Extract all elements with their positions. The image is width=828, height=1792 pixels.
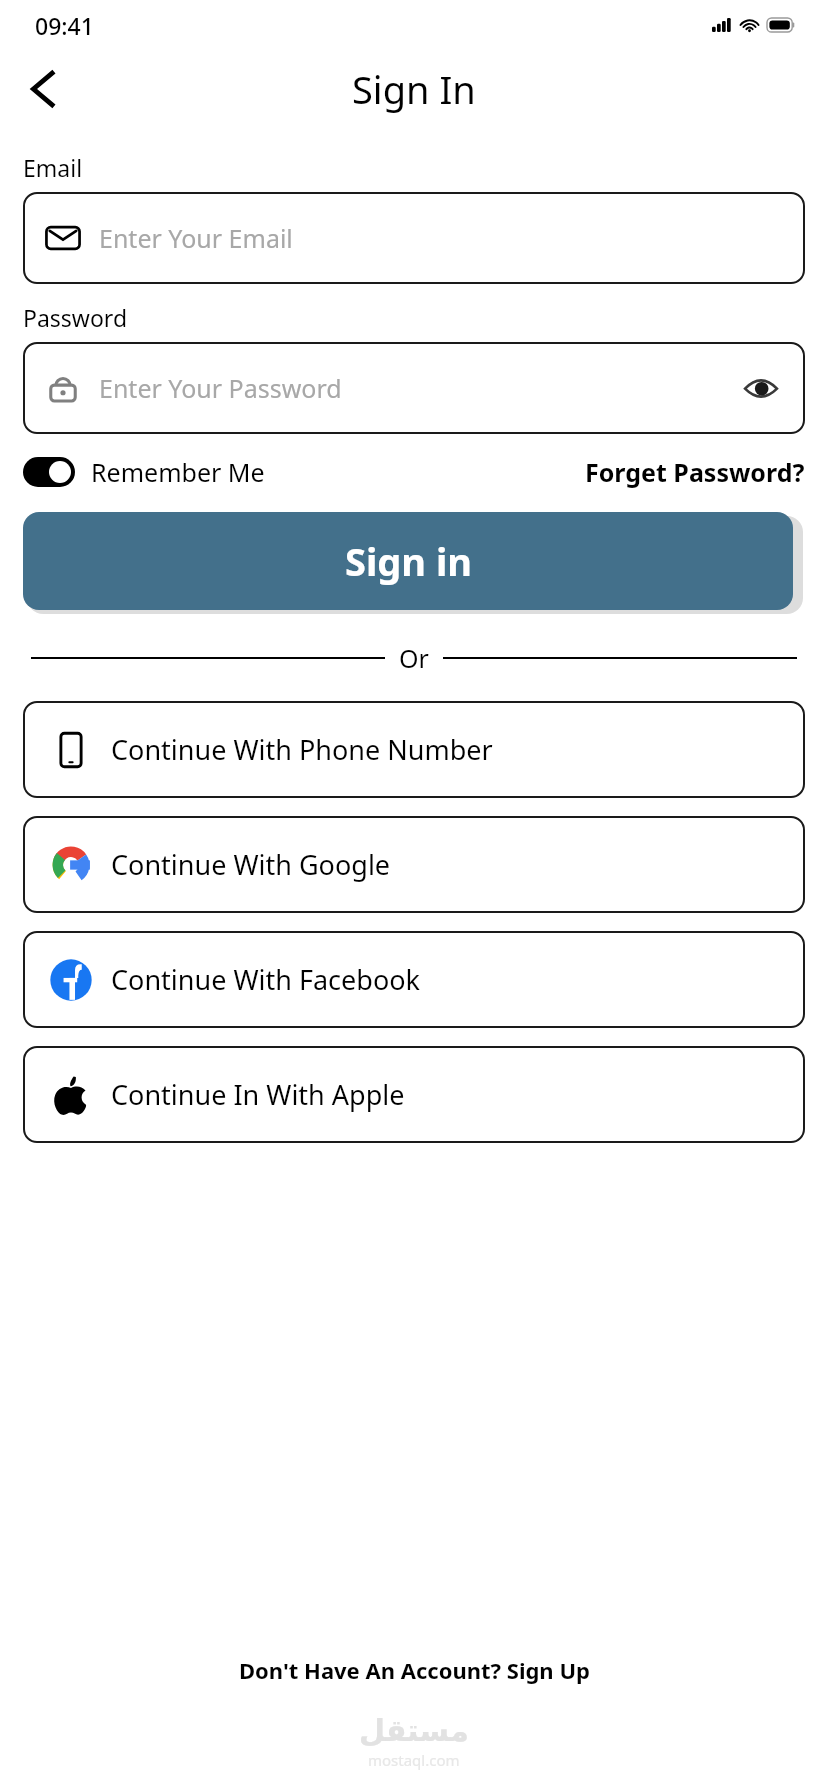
- button[interactable]: Enter Your Email: [23, 192, 805, 284]
- button[interactable]: Continue With Google: [23, 816, 805, 913]
- staticText: Sign In: [352, 63, 476, 115]
- button[interactable]: Continue With Phone Number: [23, 701, 805, 798]
- button[interactable]: Sign in: [23, 512, 793, 610]
- staticText: Remember Me: [91, 455, 265, 489]
- staticText: Continue With Phone Number: [111, 731, 493, 768]
- staticText: Don't Have An Account? Sign Up: [239, 1655, 590, 1685]
- button[interactable]: Back: [14, 60, 72, 118]
- button[interactable]: Don't Have An Account? Sign Up: [0, 1655, 828, 1685]
- button[interactable]: Continue In With Apple: [23, 1046, 805, 1143]
- staticText: Continue With Google: [111, 846, 391, 883]
- button[interactable]: Continue With Facebook: [23, 931, 805, 1028]
- staticText: Continue With Facebook: [111, 961, 420, 998]
- staticText: Forget Password?: [585, 455, 805, 489]
- button[interactable]: Show password: [739, 366, 783, 410]
- staticText: Sign in: [345, 535, 472, 587]
- button[interactable]: Forget Password?: [585, 455, 805, 489]
- staticText: Or: [399, 641, 429, 675]
- button[interactable]: Enter Your Password: [23, 342, 805, 434]
- staticText: Continue In With Apple: [111, 1076, 405, 1113]
- staticText: Enter Your Email: [99, 221, 293, 255]
- staticText: مستقل: [359, 1713, 469, 1748]
- button[interactable]: Remember Me: [23, 455, 265, 489]
- staticText: 09:41: [35, 10, 94, 41]
- staticText: Password: [23, 302, 128, 333]
- staticText: Email: [23, 152, 83, 183]
- staticText: mostaql.com: [368, 1750, 460, 1770]
- staticText: Enter Your Password: [99, 371, 342, 405]
